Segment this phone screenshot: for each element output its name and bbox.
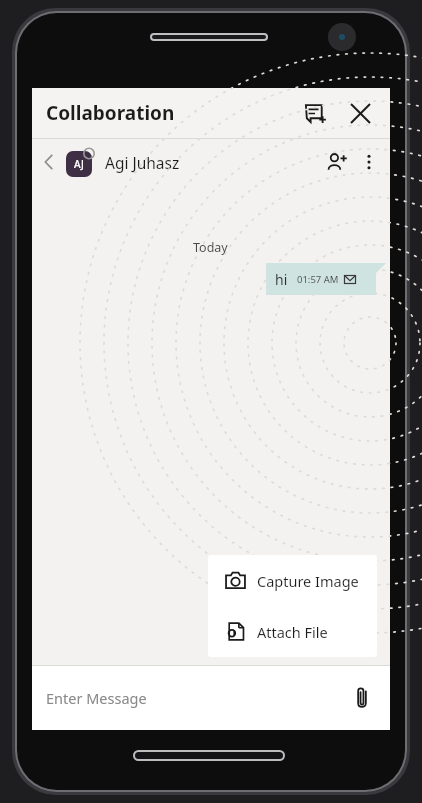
staticText: Collaboration <box>46 100 175 126</box>
button[interactable]: Attach File <box>208 606 377 657</box>
button[interactable]: Capture Image <box>208 555 377 606</box>
button[interactable]: Attach <box>342 678 382 718</box>
staticText: AJ <box>74 157 84 171</box>
button[interactable]: Add people <box>318 144 354 180</box>
staticText: hi <box>275 270 288 289</box>
staticText: Agi Juhasz <box>105 152 180 173</box>
button[interactable]: More options <box>354 147 384 177</box>
button[interactable]: Close <box>340 93 380 133</box>
staticText: Today <box>193 239 228 256</box>
button[interactable]: New chat <box>296 93 336 133</box>
button[interactable]: Enter Message <box>46 688 147 708</box>
button[interactable]: Back <box>32 145 66 179</box>
staticText: Attach File <box>257 622 328 642</box>
staticText: 01:57 AM <box>297 273 339 286</box>
staticText: Capture Image <box>257 571 359 591</box>
